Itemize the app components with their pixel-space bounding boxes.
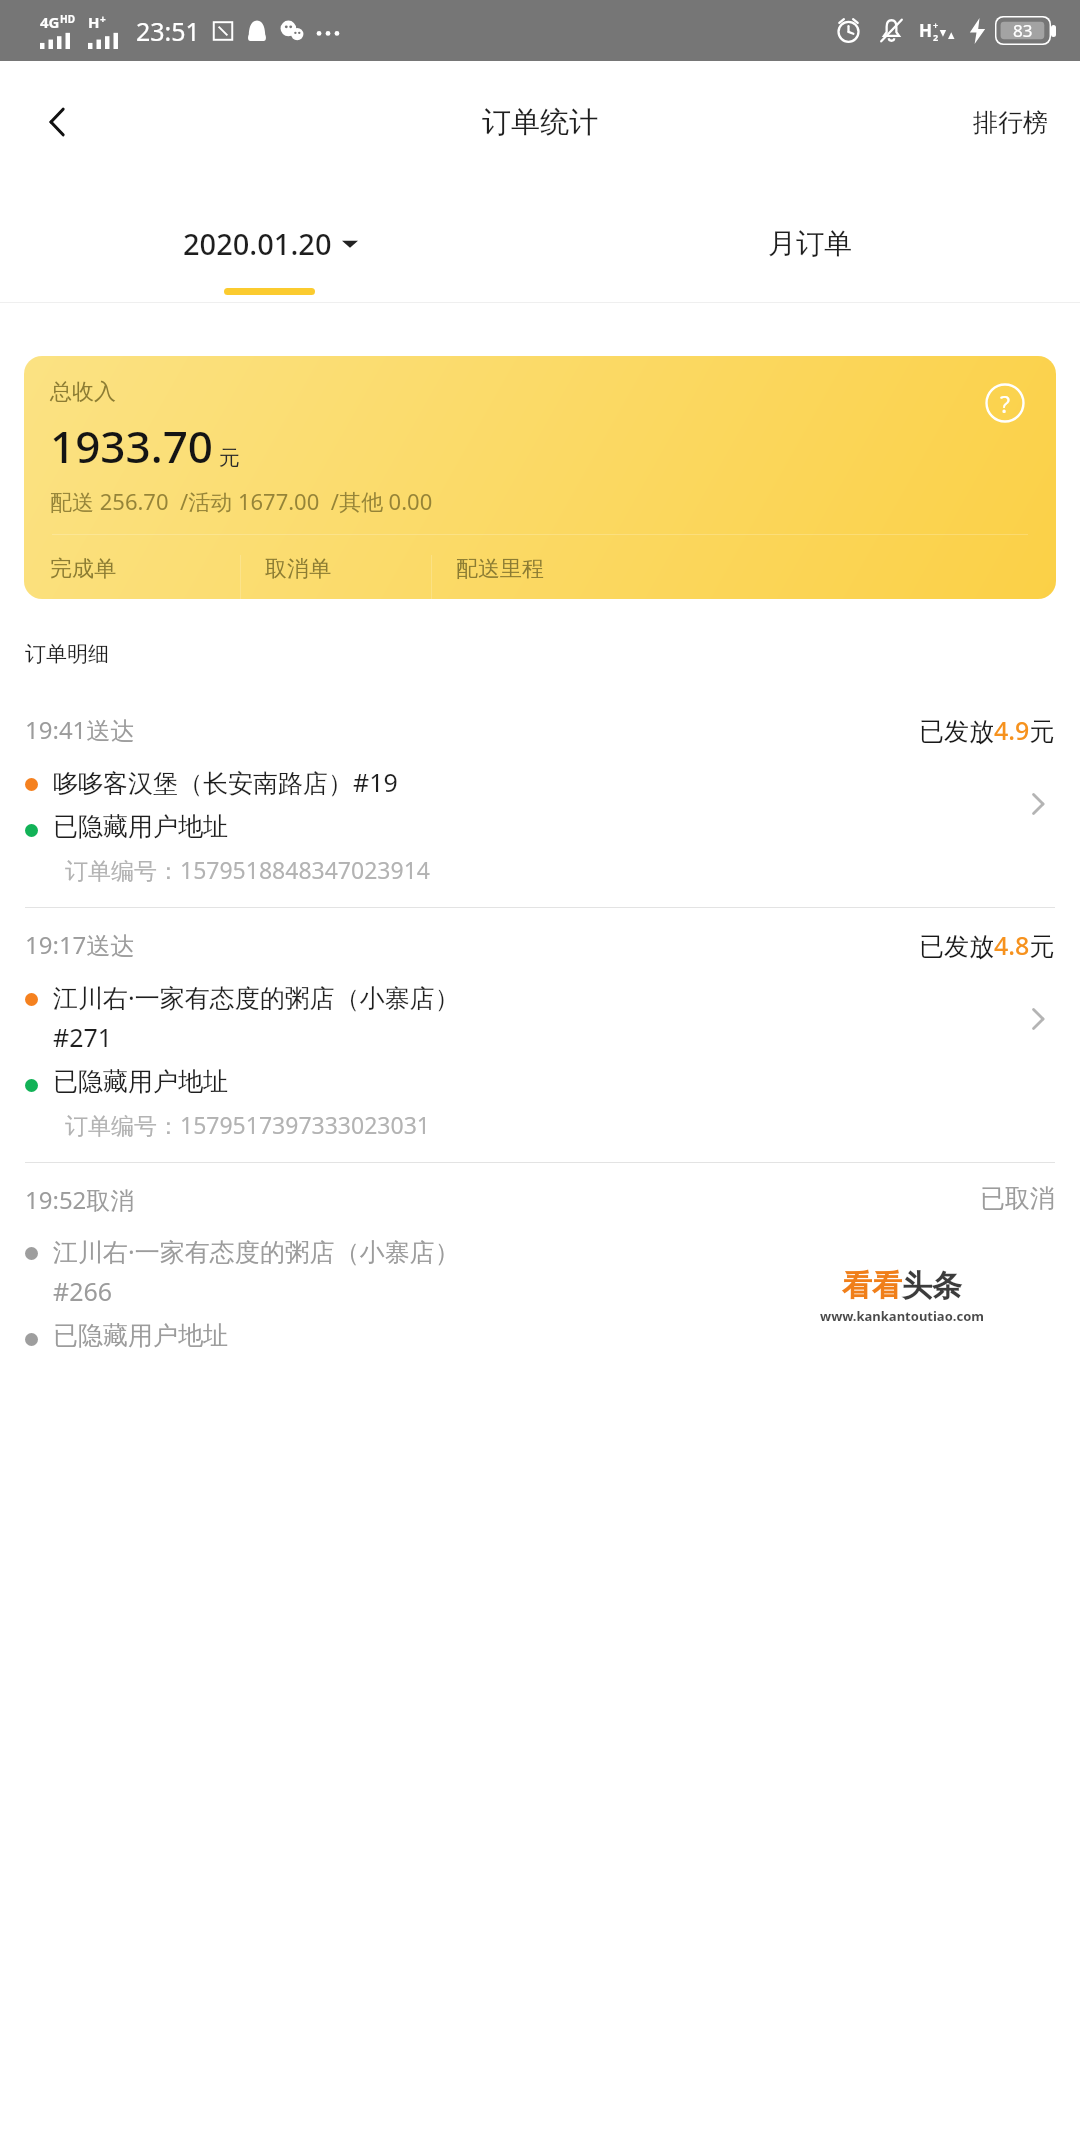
button[interactable]: Help [982,380,1028,426]
button[interactable]: 19:52取消 [0,1163,1080,1351]
staticText: 19:52取消 [25,1183,135,1216]
staticText: H [88,12,100,32]
staticText: 排行榜 [973,107,1048,138]
staticText: 23:51 [136,14,200,48]
staticText: 83 [1013,19,1033,42]
staticText: 已发放4.8元 [919,928,1055,962]
staticText: 月订单 [768,226,852,261]
staticText: 订单统计 [482,104,598,141]
staticText: 订单编号：1579517397333023031 [65,1109,430,1140]
staticText: HD [60,12,75,26]
staticText: + [100,12,106,26]
staticText: 19:41送达 [25,713,135,746]
other: Details [1021,787,1055,821]
button[interactable]: 19:17送达 [0,908,1080,1162]
other: Silent [878,17,905,44]
staticText: 4G [40,12,60,32]
staticText: 看看 [842,1267,902,1305]
button[interactable]: 月订单 [540,183,1080,303]
button[interactable]: 19:41送达 [0,693,1080,907]
staticText: 1933.70 [50,416,213,476]
button[interactable]: Back [20,84,96,160]
staticText: 取消单 [265,555,331,583]
staticText: + [933,19,939,31]
staticText: 总收入 [50,378,116,406]
other: Alarm [835,17,862,44]
staticText: 江川右·一家有态度的粥店（小寨店） [53,1234,460,1268]
button[interactable]: 2020.01.20 [0,183,540,303]
staticText: 哆哆客汉堡（长安南路店）#19 [53,765,398,799]
staticText: www.kankantoutiao.com [820,1307,984,1325]
staticText: ? [1000,388,1010,419]
staticText: 配送 256.70 /活动 1677.00 /其他 0.00 [50,486,433,516]
staticText: 订单明细 [25,641,109,667]
button[interactable]: 排行榜 [963,95,1058,150]
button[interactable]: Help [24,356,1056,599]
staticText: 已隐藏用户地址 [53,811,228,842]
staticText: 2 [933,31,939,43]
staticText: #271 [53,1020,113,1054]
staticText: 已取消 [980,1183,1055,1214]
staticText: 元 [219,445,240,471]
other: Details [1021,1002,1055,1036]
staticText: 已发放4.9元 [919,713,1055,747]
staticText: 订单编号：1579518848347023914 [65,854,430,885]
staticText: 配送里程 [456,555,544,583]
staticText: 已隐藏用户地址 [53,1066,228,1097]
staticText: 完成单 [50,555,116,583]
staticText: 江川右·一家有态度的粥店（小寨店） [53,980,460,1014]
staticText: 19:17送达 [25,928,135,961]
staticText: 2020.01.20 [183,224,332,263]
staticText: #266 [53,1274,113,1308]
staticText: H [919,19,933,42]
staticText: 头条 [902,1267,962,1305]
staticText: 已隐藏用户地址 [53,1320,228,1351]
